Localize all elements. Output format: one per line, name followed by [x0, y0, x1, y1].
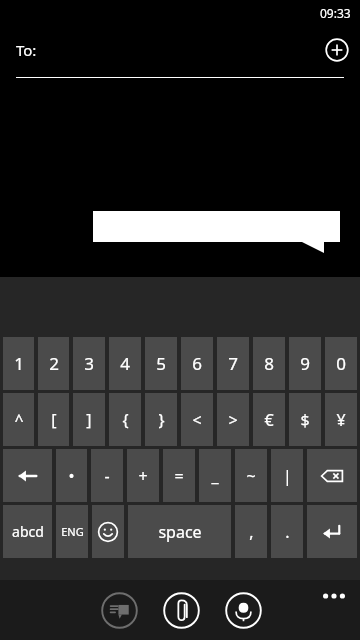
button[interactable]: 2: [38, 337, 69, 390]
button[interactable]: [93, 211, 340, 253]
staticText: ENG: [61, 524, 84, 539]
staticText: >: [228, 409, 238, 431]
staticText: 2: [49, 352, 59, 375]
button[interactable]: 8: [253, 337, 285, 390]
staticText: }: [158, 409, 165, 431]
staticText: [: [51, 409, 57, 431]
button[interactable]: More options: [316, 584, 352, 608]
button[interactable]: Backspace: [307, 449, 357, 502]
staticText: ~: [246, 465, 256, 487]
button[interactable]: Enter: [307, 505, 357, 558]
button[interactable]: Previous page: [3, 449, 52, 502]
button[interactable]: |: [271, 449, 303, 502]
button[interactable]: 0: [325, 337, 357, 390]
staticText: 8: [264, 352, 274, 375]
staticText: 0: [336, 352, 346, 375]
button[interactable]: }: [145, 393, 177, 446]
button[interactable]: Voice: [225, 592, 262, 629]
button[interactable]: Add recipient: [325, 38, 349, 62]
button[interactable]: [: [38, 393, 69, 446]
button[interactable]: .: [271, 505, 303, 558]
staticText: 9: [300, 352, 310, 375]
button[interactable]: 3: [73, 337, 105, 390]
button[interactable]: <: [181, 393, 213, 446]
button[interactable]: €: [253, 393, 285, 446]
button[interactable]: {: [109, 393, 141, 446]
staticText: |: [283, 465, 292, 487]
staticText: ,: [249, 521, 254, 543]
button[interactable]: 6: [181, 337, 213, 390]
staticText: $: [300, 409, 310, 431]
staticText: •: [68, 465, 75, 487]
button[interactable]: ^: [3, 393, 34, 446]
button[interactable]: abcd: [3, 505, 52, 558]
button[interactable]: 5: [145, 337, 177, 390]
button[interactable]: _: [199, 449, 231, 502]
staticText: ]: [86, 409, 92, 431]
button[interactable]: ¥: [325, 393, 357, 446]
button[interactable]: -: [91, 449, 123, 502]
staticText: space: [158, 521, 202, 543]
staticText: 7: [228, 352, 238, 375]
button[interactable]: ~: [235, 449, 267, 502]
staticText: -: [104, 465, 110, 487]
staticText: abcd: [12, 522, 44, 541]
button[interactable]: ENG: [56, 505, 88, 558]
staticText: €: [264, 409, 274, 431]
staticText: _: [211, 465, 219, 487]
button[interactable]: 1: [3, 337, 34, 390]
staticText: To:: [16, 40, 37, 60]
button[interactable]: 9: [289, 337, 321, 390]
button[interactable]: Attach: [163, 592, 200, 629]
button[interactable]: •: [56, 449, 87, 502]
staticText: 3: [84, 352, 94, 375]
button[interactable]: ,: [235, 505, 267, 558]
staticText: ^: [14, 409, 24, 431]
staticText: 09:33: [320, 5, 351, 21]
button[interactable]: To:: [0, 26, 360, 78]
staticText: +: [138, 465, 148, 487]
button[interactable]: >: [217, 393, 249, 446]
button[interactable]: +: [127, 449, 159, 502]
button[interactable]: $: [289, 393, 321, 446]
button[interactable]: ]: [73, 393, 105, 446]
staticText: .: [285, 521, 290, 543]
button[interactable]: 4: [109, 337, 141, 390]
button[interactable]: Send message: [101, 592, 138, 629]
button[interactable]: 7: [217, 337, 249, 390]
button[interactable]: space: [128, 505, 231, 558]
staticText: ¥: [336, 409, 346, 431]
staticText: <: [192, 409, 202, 431]
staticText: {: [122, 409, 129, 431]
button[interactable]: =: [163, 449, 195, 502]
staticText: =: [174, 465, 184, 487]
staticText: 5: [156, 352, 166, 375]
staticText: 6: [192, 352, 202, 375]
staticText: 4: [120, 352, 130, 375]
button[interactable]: Emoji: [92, 505, 124, 558]
staticText: 1: [14, 352, 24, 375]
